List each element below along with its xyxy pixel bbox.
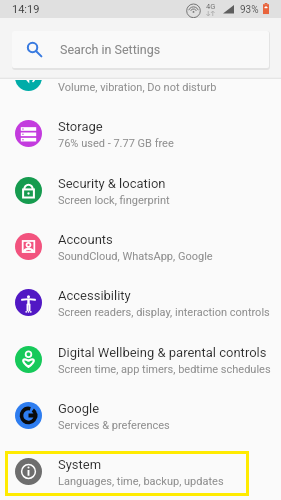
button[interactable]: Sound — [0, 80, 281, 105]
staticText: System — [58, 457, 102, 472]
button[interactable]: Search in Settings — [12, 31, 269, 68]
staticText: Languages, time, backup, updates — [58, 475, 224, 488]
staticText: Screen lock, fingerprint — [58, 194, 170, 207]
staticText: Volume, vibration, Do not disturb — [58, 81, 217, 94]
button[interactable]: Accessibility — [0, 274, 281, 330]
staticText: SoundCloud, WhatsApp, Google — [58, 250, 213, 263]
button[interactable]: Digital Wellbeing & parental controls — [0, 331, 281, 387]
button[interactable]: Accounts — [0, 218, 281, 274]
staticText: Google — [58, 401, 100, 416]
button[interactable]: System — [0, 443, 281, 499]
staticText: 14:19 — [12, 3, 40, 16]
staticText: Search in Settings — [60, 42, 161, 57]
staticText: 4G — [206, 2, 216, 11]
staticText: Screen time, app timers, bedtime schedul… — [58, 363, 271, 376]
staticText: Accessibility — [58, 288, 131, 303]
staticText: Screen readers, display, interaction con… — [58, 306, 270, 319]
staticText: Digital Wellbeing & parental controls — [58, 345, 267, 360]
staticText: Accounts — [58, 232, 113, 247]
button[interactable]: Security & location — [0, 162, 281, 218]
staticText: 93% — [240, 4, 259, 16]
staticText: Services & preferences — [58, 419, 170, 432]
button[interactable]: Google — [0, 387, 281, 443]
staticText: 76% used - 7.77 GB free — [58, 137, 174, 150]
staticText: Security & location — [58, 176, 166, 191]
button[interactable]: Storage — [0, 105, 281, 161]
staticText: Storage — [58, 119, 103, 134]
